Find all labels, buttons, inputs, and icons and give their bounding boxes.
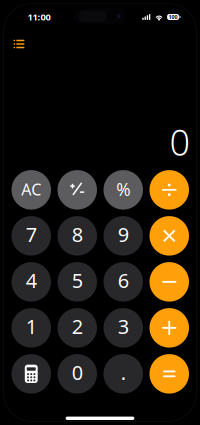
staticText: 6 [118,267,129,294]
staticText: 11:00 [27,11,50,23]
staticText: 100 [168,13,177,21]
button[interactable]: 3 [103,308,143,348]
staticText: AC [21,179,41,200]
button[interactable]: 9 [103,216,143,256]
staticText: 0 [169,118,190,166]
button[interactable]: Divide [149,170,189,210]
button[interactable]: Multiply [149,216,189,256]
staticText: % [116,178,130,201]
button[interactable]: . [103,354,143,394]
button[interactable]: 0 [57,354,97,394]
button[interactable]: Add [149,308,189,348]
button[interactable]: 8 [57,216,97,256]
staticText: . [121,359,126,386]
button[interactable]: 2 [57,308,97,348]
button[interactable]: % [103,170,143,210]
button[interactable]: History [5,31,33,57]
button[interactable]: AC [11,170,51,210]
staticText: 3 [118,313,129,340]
staticText: 8 [72,221,83,248]
staticText: 0 [72,359,83,386]
button[interactable]: Calculator [11,354,51,394]
button[interactable]: Equals [149,354,189,394]
button[interactable]: 7 [11,216,51,256]
staticText: 4 [26,267,37,294]
button[interactable]: 5 [57,262,97,302]
staticText: 5 [72,267,83,294]
staticText: 2 [72,313,83,340]
button[interactable]: 6 [103,262,143,302]
button[interactable]: 1 [11,308,51,348]
button[interactable]: Plus minus [57,170,97,210]
staticText: 9 [118,221,129,248]
button[interactable]: 4 [11,262,51,302]
staticText: 1 [26,313,37,340]
staticText: 7 [26,221,37,248]
button[interactable]: Subtract [149,262,189,302]
